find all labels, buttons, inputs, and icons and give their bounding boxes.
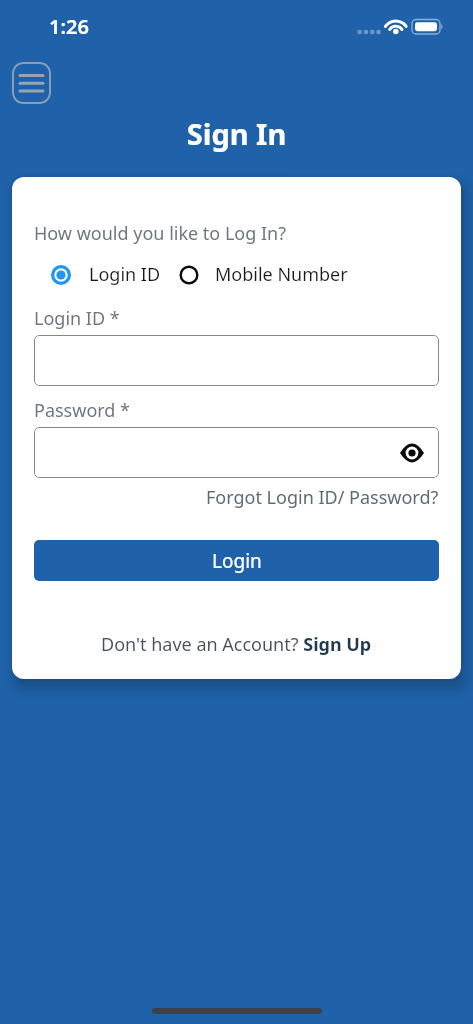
staticText: Don't have an Account? Sign Up bbox=[101, 632, 372, 657]
staticText: Login ID bbox=[89, 262, 161, 287]
staticText: How would you like to Log In? bbox=[34, 221, 287, 246]
staticText: 1:26 bbox=[49, 13, 89, 40]
button[interactable] bbox=[34, 427, 439, 478]
button[interactable]: Login bbox=[34, 540, 439, 581]
button[interactable]: Forgot Login ID/ Password? bbox=[206, 485, 439, 510]
button[interactable]: Mobile Number bbox=[179, 262, 348, 287]
staticText: Mobile Number bbox=[215, 262, 348, 287]
staticText: Sign In bbox=[0, 114, 473, 153]
button[interactable]: Don't have an Account? Sign Up bbox=[34, 632, 439, 657]
button[interactable] bbox=[34, 335, 439, 386]
button[interactable] bbox=[400, 444, 424, 462]
staticText: Login ID * bbox=[34, 306, 120, 331]
button[interactable] bbox=[12, 62, 51, 104]
staticText: Login bbox=[212, 548, 262, 574]
button[interactable]: Login ID bbox=[51, 262, 161, 287]
staticText: Password * bbox=[34, 398, 131, 423]
